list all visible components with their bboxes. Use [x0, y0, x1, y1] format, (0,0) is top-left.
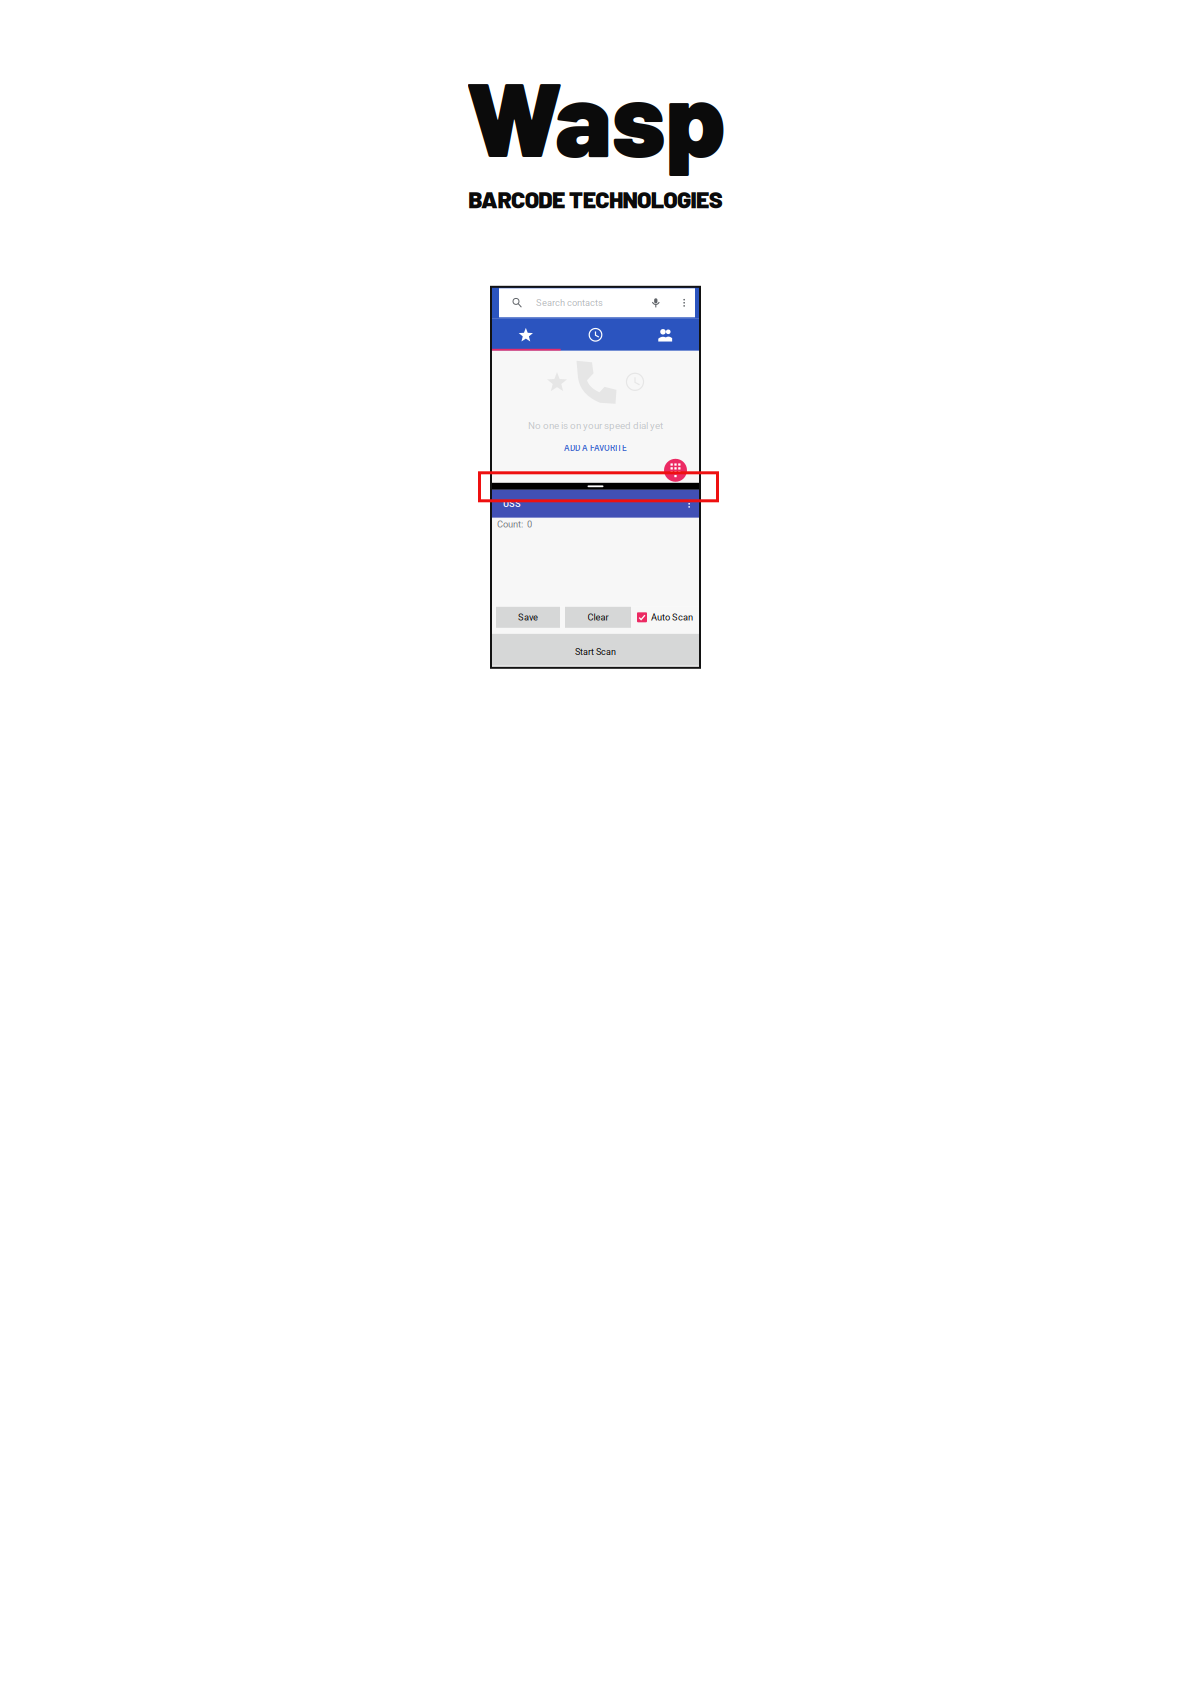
staticText: Save: [518, 612, 538, 623]
button[interactable]: Start Scan: [491, 634, 700, 666]
button[interactable]: Save: [496, 607, 560, 628]
button[interactable]: Search contacts: [499, 288, 650, 317]
staticText: Auto Scan: [651, 612, 693, 623]
button[interactable]: More options: [685, 497, 693, 511]
button[interactable]: Recents: [561, 320, 630, 350]
button[interactable]: ADD A FAVORITE: [556, 440, 635, 456]
button[interactable]: Dial pad: [664, 459, 687, 482]
button[interactable]: Voice search: [650, 288, 661, 317]
staticText: No one is on your speed dial yet: [528, 420, 663, 431]
staticText: USS: [503, 498, 521, 509]
button[interactable]: Auto Scan: [637, 612, 693, 623]
staticText: Count: 0: [497, 519, 532, 530]
button[interactable]: Contacts: [630, 320, 700, 350]
staticText: Clear: [587, 612, 608, 623]
staticText: ADD A FAVORITE: [564, 443, 627, 453]
staticText: BARCODE TECHNOLOGIES: [468, 185, 723, 213]
staticText: Wasp: [465, 53, 725, 178]
button[interactable]: More options: [661, 290, 686, 316]
button[interactable]: Favorites: [491, 320, 561, 350]
button[interactable]: Clear: [565, 607, 631, 628]
staticText: Start Scan: [575, 646, 616, 657]
staticText: Search contacts: [536, 297, 603, 308]
